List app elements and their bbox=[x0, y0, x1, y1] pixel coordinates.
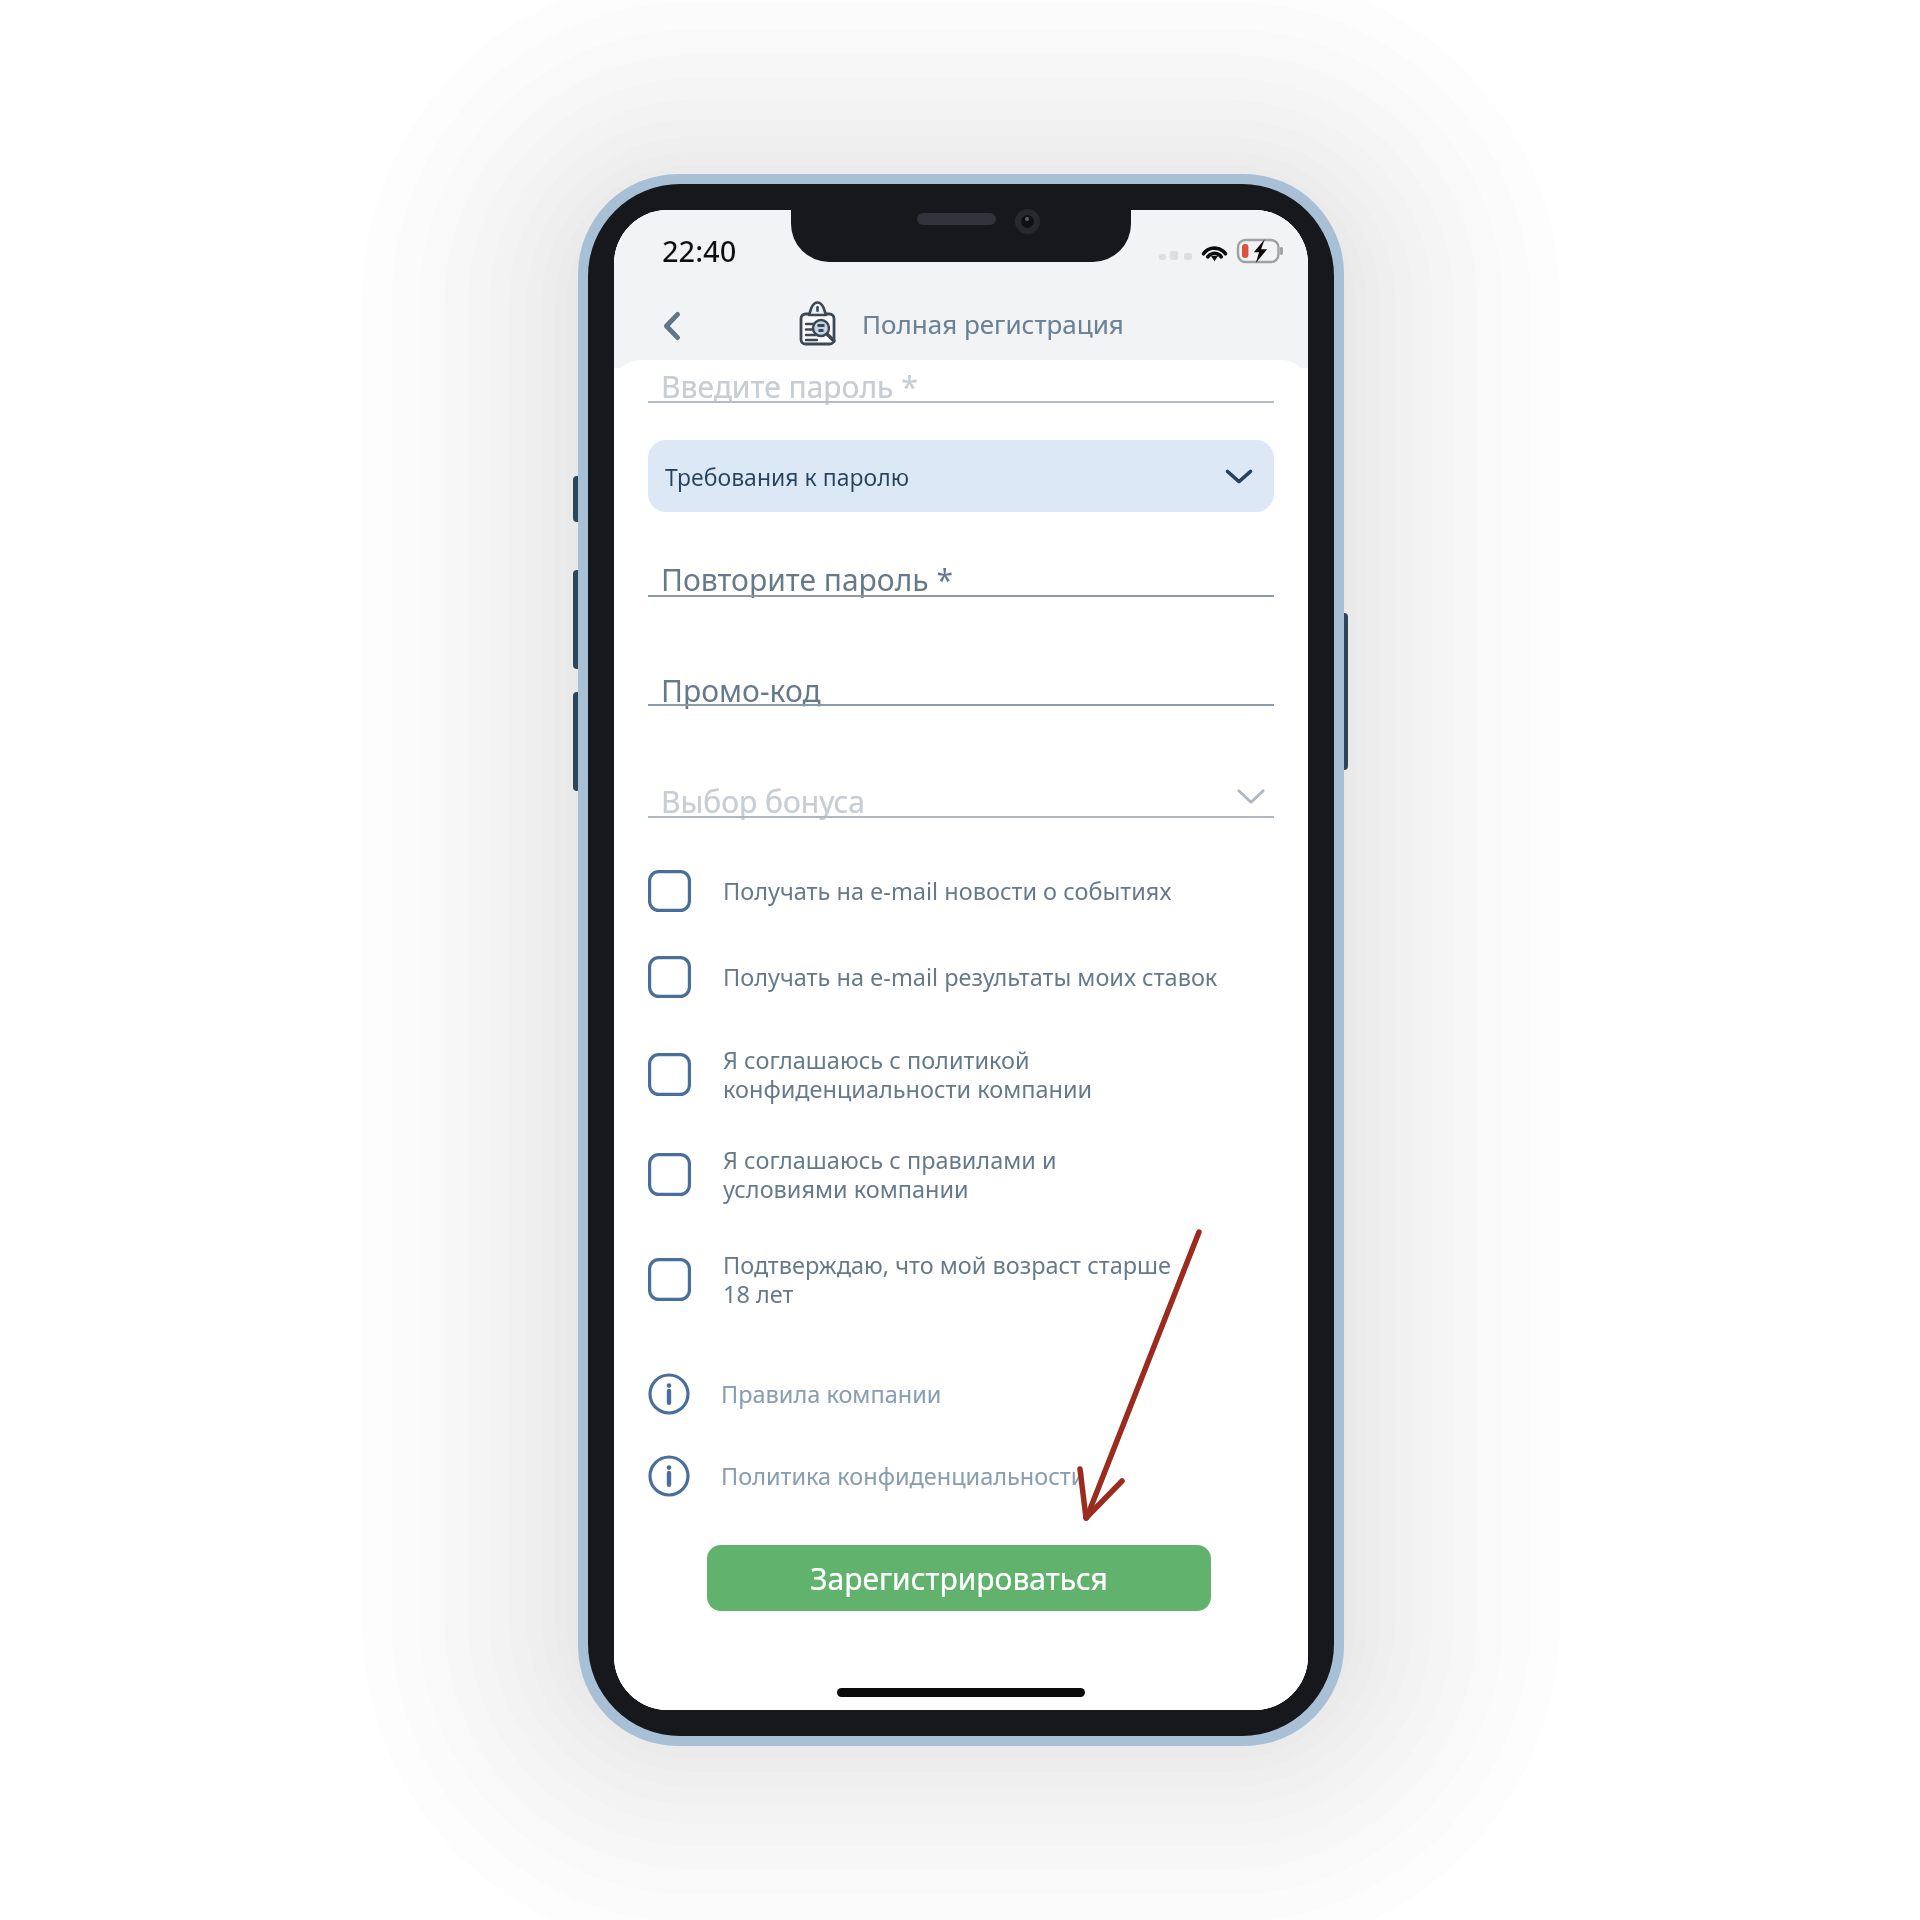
staticText: Требования к паролю bbox=[665, 461, 910, 492]
button[interactable]: Правила компании bbox=[648, 1373, 1208, 1415]
staticText: Я соглашаюсь с правилами и условиями ком… bbox=[723, 1144, 1057, 1205]
button[interactable]: Повторите пароль * bbox=[648, 549, 1274, 601]
button[interactable]: Требования к паролю bbox=[648, 440, 1274, 512]
button[interactable]: Введите пароль * bbox=[648, 356, 1274, 407]
staticText: Выбор бонуса bbox=[661, 781, 866, 822]
button[interactable]: Я соглашаюсь с правилами и условиями ком… bbox=[648, 1135, 1274, 1213]
button[interactable]: Я соглашаюсь с политикой конфиденциально… bbox=[648, 1035, 1274, 1113]
staticText: 22:40 bbox=[662, 231, 737, 270]
staticText: Подтверждаю, что мой возраст старше 18 л… bbox=[723, 1249, 1171, 1310]
staticText: Получать на e-mail новости о событиях bbox=[723, 875, 1172, 907]
staticText: Повторите пароль * bbox=[661, 559, 953, 600]
staticText: Промо-код bbox=[661, 670, 821, 711]
button[interactable]: Подтверждаю, что мой возраст старше 18 л… bbox=[648, 1240, 1274, 1318]
staticText: Полная регистрация bbox=[862, 306, 1124, 341]
staticText: Политика конфиденциальности bbox=[721, 1460, 1086, 1492]
button[interactable]: Получать на e-mail результаты моих ставо… bbox=[648, 956, 1274, 998]
staticText: Зарегистрироваться bbox=[810, 1558, 1108, 1599]
button[interactable]: Политика конфиденциальности bbox=[648, 1455, 1208, 1497]
button[interactable]: Выбор бонуса bbox=[648, 771, 1274, 822]
staticText: Получать на e-mail результаты моих ставо… bbox=[723, 961, 1218, 993]
staticText: Введите пароль * bbox=[661, 366, 918, 407]
staticText: Правила компании bbox=[721, 1378, 942, 1410]
button[interactable]: Промо-код bbox=[648, 660, 1274, 710]
button[interactable]: Зарегистрироваться bbox=[707, 1545, 1211, 1611]
button[interactable]: Получать на e-mail новости о событиях bbox=[648, 870, 1274, 912]
button[interactable]: Back bbox=[644, 298, 700, 354]
staticText: Я соглашаюсь с политикой конфиденциально… bbox=[723, 1044, 1093, 1105]
